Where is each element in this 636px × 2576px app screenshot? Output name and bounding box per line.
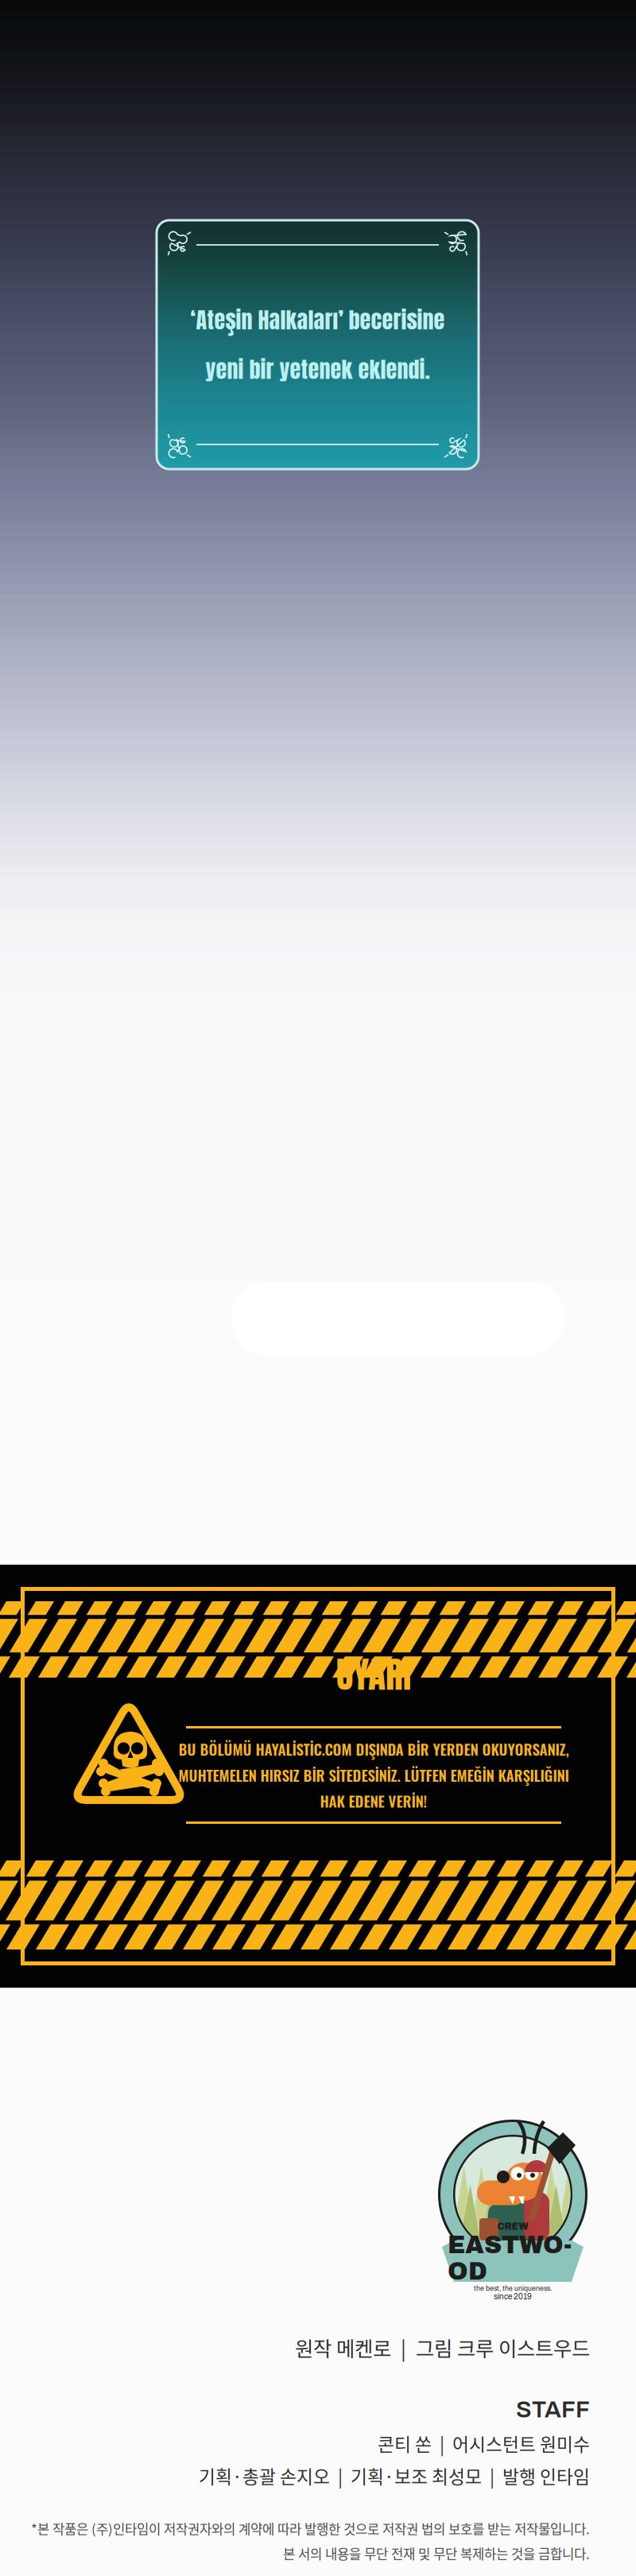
staticText: HAK EDENE VERİN!	[320, 1790, 427, 1812]
staticText: 기획·총괄 손지오 | 기획·보조 최성모 | 발행 인타임	[199, 2463, 590, 2489]
staticText: 본 서의 내용을 무단 전재 및 무단 복제하는 것을 금합니다.	[283, 2544, 590, 2563]
staticText: CREW	[497, 2221, 528, 2232]
staticText: STAFF	[516, 2397, 590, 2422]
staticText: EASTWOOD	[448, 2232, 578, 2285]
staticText: yeni bir yetenek eklendi.	[206, 353, 430, 386]
staticText: MUHTEMELEN HIRSIZ BİR SİTEDESİNİZ. LÜTFE…	[178, 1764, 569, 1786]
staticText: BU BÖLÜMÜ HAYALİSTİC.COM DIŞINDA BİR YER…	[178, 1738, 569, 1760]
staticText: *본 작품은 (주)인타임이 저작권자와의 계약에 따라 발행한 것으로 저작권…	[31, 2519, 590, 2538]
staticText: 원작 메켄로 | 그림 크루 이스트우드	[295, 2333, 590, 2362]
staticText: ‘Ateşin Halkaları’ becerisine	[190, 303, 445, 337]
staticText: since 2019	[494, 2292, 532, 2301]
staticText: 콘티 쏜 | 어시스턴트 원미수	[378, 2430, 590, 2456]
staticText: UYARI	[336, 1647, 411, 1702]
staticText: the best, the uniqueness.	[474, 2285, 552, 2292]
